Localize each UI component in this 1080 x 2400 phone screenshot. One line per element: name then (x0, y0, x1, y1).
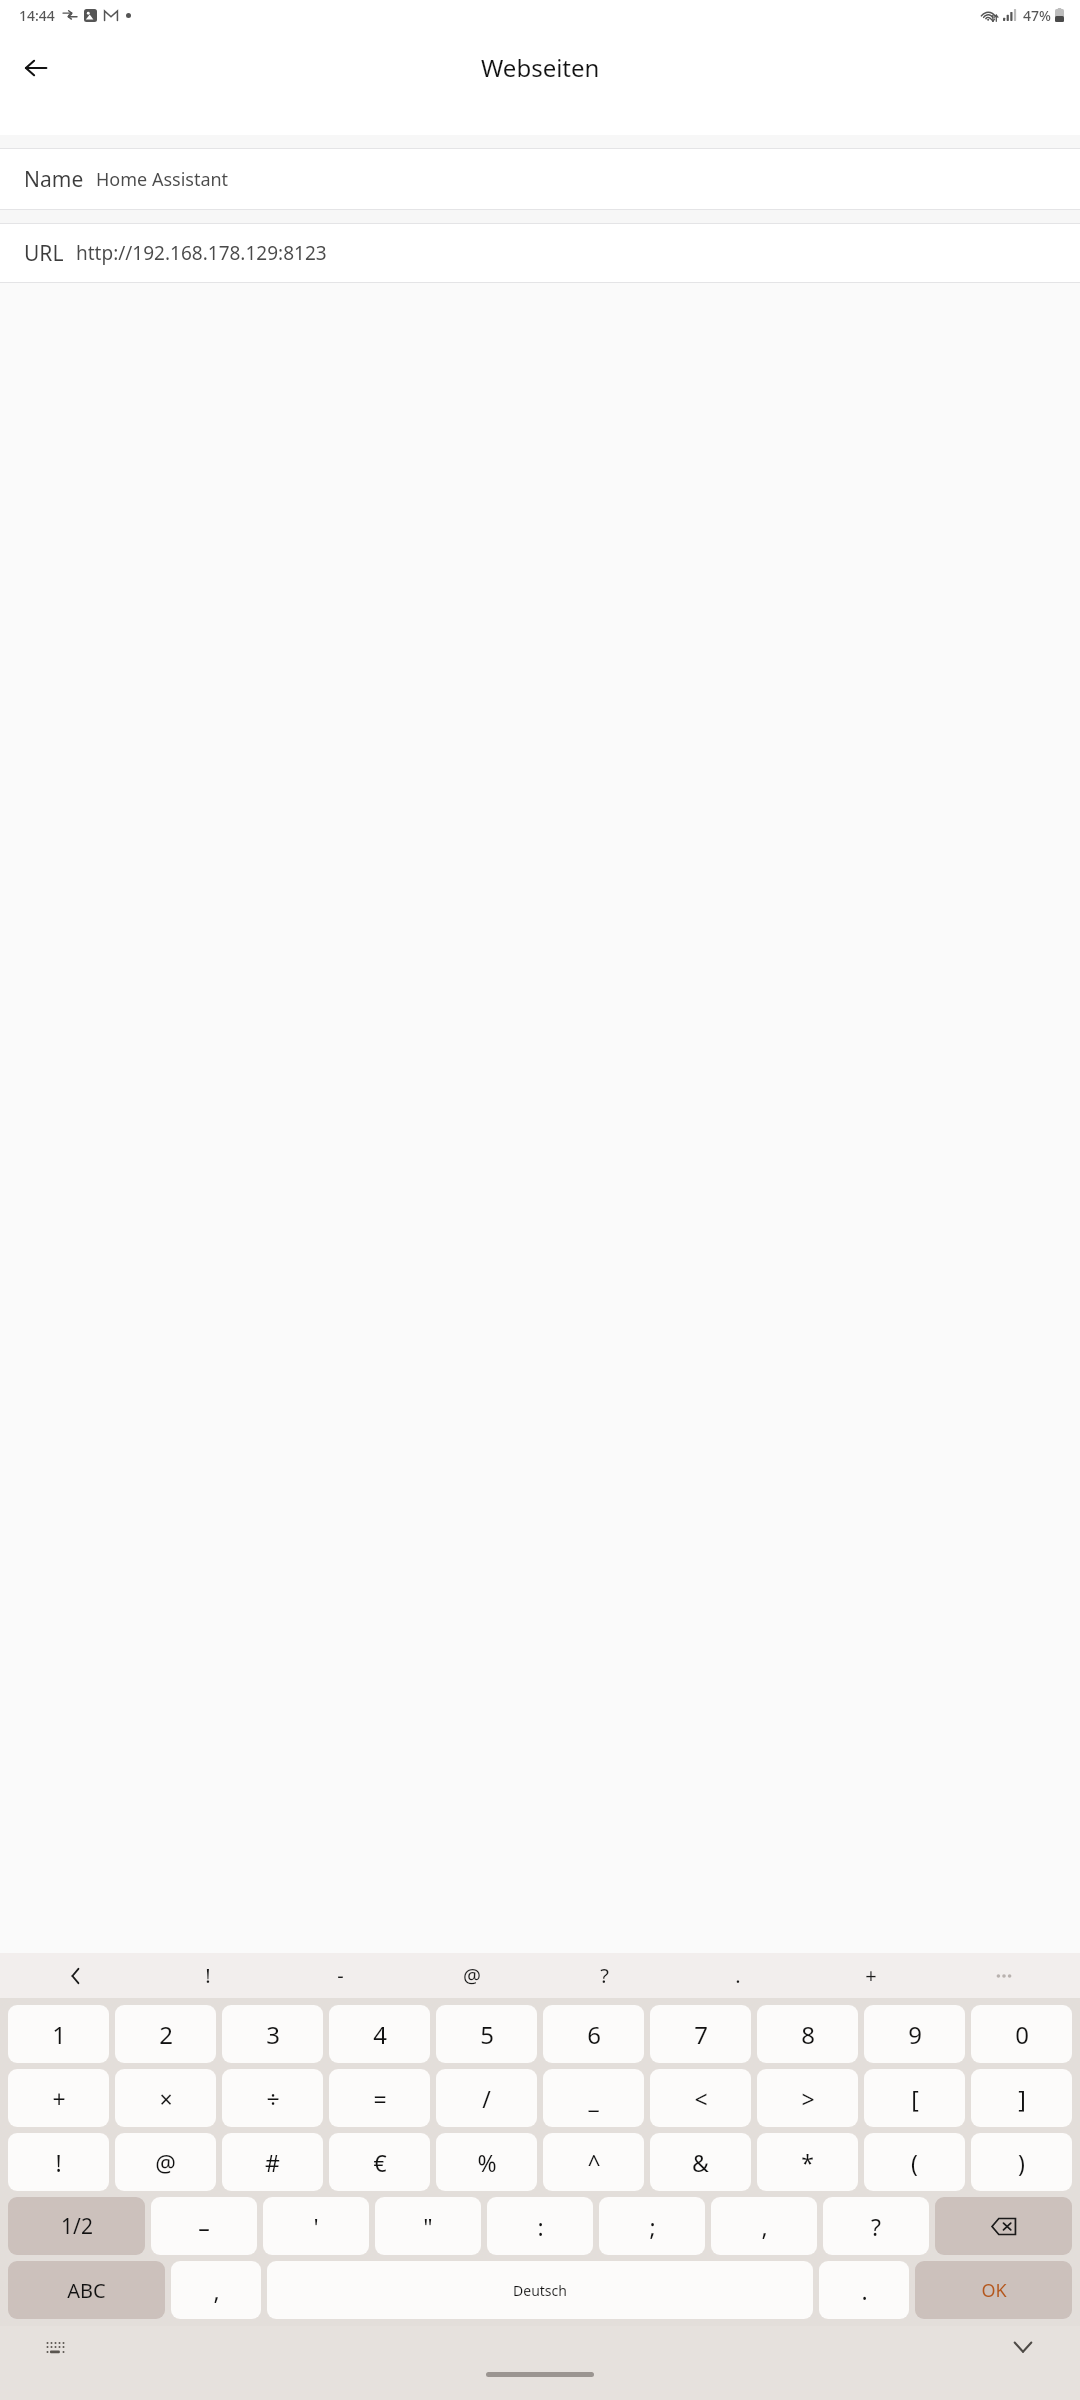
button[interactable]: _ (543, 2069, 644, 2127)
staticText: ABC (67, 2277, 106, 2304)
staticText: > (801, 2083, 815, 2114)
button[interactable]: Hide keyboard (1006, 2330, 1040, 2364)
button[interactable]: – (151, 2197, 257, 2255)
button[interactable]: % (436, 2133, 537, 2191)
button[interactable]: 2 (115, 2005, 216, 2063)
staticText: + (52, 2083, 66, 2114)
button[interactable]: # (222, 2133, 323, 2191)
button[interactable]: 1 (8, 2005, 109, 2063)
staticText: 1/2 (61, 2212, 93, 2241)
staticText: / (482, 2083, 491, 2114)
button[interactable]: 9 (864, 2005, 965, 2063)
staticText: ( (911, 2147, 918, 2178)
button[interactable]: More (937, 1953, 1070, 1998)
button[interactable]: Previous (10, 1953, 142, 1998)
staticText: ? (871, 2211, 881, 2242)
button[interactable]: , (711, 2197, 817, 2255)
button[interactable]: ' (263, 2197, 369, 2255)
button[interactable]: > (757, 2069, 858, 2127)
button[interactable]: ) (971, 2133, 1072, 2191)
button[interactable]: 3 (222, 2005, 323, 2063)
button[interactable]: . (819, 2261, 909, 2319)
staticText: @ (463, 1962, 481, 1989)
button[interactable]: + (8, 2069, 109, 2127)
staticText: @ (155, 2147, 176, 2178)
button[interactable]: [ (864, 2069, 965, 2127)
staticText: _ (588, 2083, 599, 2114)
button[interactable]: 7 (650, 2005, 751, 2063)
button[interactable]: € (329, 2133, 430, 2191)
staticText: , (213, 2275, 220, 2306)
button[interactable]: ; (599, 2197, 705, 2255)
staticText: ÷ (266, 2083, 280, 2114)
button[interactable]: ? (823, 2197, 929, 2255)
button[interactable]: 5 (436, 2005, 537, 2063)
staticText: http://192.168.178.129:8123 (76, 240, 327, 266)
button[interactable]: × (115, 2069, 216, 2127)
staticText: : (537, 2211, 544, 2242)
staticText: Home Assistant (96, 167, 229, 192)
staticText: ; (649, 2211, 656, 2242)
button[interactable]: Name (0, 149, 1080, 209)
button[interactable]: " (375, 2197, 481, 2255)
staticText: ? (600, 1962, 609, 1989)
button[interactable]: ÷ (222, 2069, 323, 2127)
button[interactable]: Deutsch (267, 2261, 813, 2319)
staticText: ^ (587, 2147, 601, 2178)
button[interactable]: Keyboard layout (38, 2330, 72, 2364)
staticText: [ (911, 2083, 919, 2114)
button[interactable]: ? (538, 1953, 671, 1998)
button[interactable]: ] (971, 2069, 1072, 2127)
button[interactable]: . (671, 1953, 804, 1998)
button[interactable]: @ (406, 1953, 538, 1998)
staticText: 7 (694, 2018, 708, 2051)
button[interactable]: & (650, 2133, 751, 2191)
staticText: 47% (1023, 6, 1051, 25)
staticText: 14:44 (19, 6, 55, 25)
button[interactable]: * (757, 2133, 858, 2191)
staticText: . (861, 2275, 868, 2306)
button[interactable]: Back (8, 40, 64, 96)
button[interactable]: ! (142, 1953, 274, 1998)
button[interactable]: < (650, 2069, 751, 2127)
button[interactable]: ( (864, 2133, 965, 2191)
staticText: 6 (587, 2018, 601, 2051)
button[interactable]: URL (0, 224, 1080, 282)
staticText: 1 (52, 2018, 66, 2051)
staticText: ) (1018, 2147, 1025, 2178)
button[interactable]: 8 (757, 2005, 858, 2063)
button[interactable]: 0 (971, 2005, 1072, 2063)
button[interactable]: : (487, 2197, 593, 2255)
staticText: × (159, 2083, 173, 2114)
staticText: 0 (1015, 2018, 1029, 2051)
button[interactable]: 1/2 (8, 2197, 145, 2255)
staticText: 2 (159, 2018, 173, 2051)
button[interactable]: / (436, 2069, 537, 2127)
button[interactable]: @ (115, 2133, 216, 2191)
button[interactable]: 6 (543, 2005, 644, 2063)
button[interactable]: 4 (329, 2005, 430, 2063)
staticText: 9 (908, 2018, 922, 2051)
button[interactable]: - (274, 1953, 406, 1998)
button[interactable]: = (329, 2069, 430, 2127)
button[interactable]: ^ (543, 2133, 644, 2191)
staticText: Webseiten (481, 51, 600, 84)
staticText: " (423, 2211, 433, 2242)
button[interactable]: ! (8, 2133, 109, 2191)
staticText: ] (1018, 2083, 1026, 2114)
button[interactable]: + (804, 1953, 937, 1998)
staticText: - (337, 1962, 344, 1989)
staticText: Name (24, 165, 84, 194)
staticText: ' (313, 2211, 319, 2242)
staticText: < (694, 2083, 708, 2114)
staticText: Deutsch (513, 2281, 567, 2300)
staticText: 5 (480, 2018, 494, 2051)
staticText: = (373, 2083, 387, 2114)
staticText: – (198, 2211, 210, 2242)
button[interactable]: OK (915, 2261, 1072, 2319)
button[interactable]: ABC (8, 2261, 165, 2319)
staticText: * (801, 2147, 814, 2178)
staticText: 8 (801, 2018, 815, 2051)
button[interactable]: Backspace (935, 2197, 1072, 2255)
button[interactable]: , (171, 2261, 261, 2319)
